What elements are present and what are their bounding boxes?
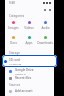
staticText: Downloads bbox=[37, 41, 53, 45]
button[interactable]: Recent files bbox=[5, 75, 54, 81]
staticText: Docs bbox=[10, 41, 17, 45]
staticText: Videos bbox=[24, 26, 34, 30]
staticText: Recent files bbox=[15, 76, 32, 80]
button[interactable]: Apps bbox=[21, 35, 37, 46]
staticText: Apps bbox=[25, 41, 33, 45]
staticText: Categories bbox=[9, 14, 25, 18]
staticText: 9:30 bbox=[9, 1, 15, 5]
staticText: Internal storage bbox=[15, 58, 38, 62]
staticText: SD card bbox=[9, 58, 20, 62]
button[interactable]: Search bbox=[42, 7, 47, 12]
staticText: Storage bbox=[9, 51, 20, 55]
staticText: Add account bbox=[15, 89, 33, 93]
button[interactable]: Add account bbox=[5, 88, 54, 94]
button[interactable]: Google Drive bbox=[5, 67, 54, 75]
button[interactable]: Audio bbox=[37, 20, 53, 31]
staticText: 12 GB free bbox=[9, 62, 22, 65]
staticText: Sources bbox=[9, 83, 21, 87]
staticText: Google Drive bbox=[15, 68, 34, 72]
button[interactable]: Account bbox=[47, 7, 52, 12]
staticText: Signed in bbox=[15, 72, 26, 75]
button[interactable]: Internal storage bbox=[5, 57, 54, 65]
staticText: Audio bbox=[41, 26, 50, 30]
button[interactable]: Docs bbox=[5, 35, 21, 46]
button[interactable]: Videos bbox=[21, 20, 37, 31]
button[interactable]: Images bbox=[5, 20, 21, 31]
button[interactable]: SD card bbox=[2, 55, 57, 67]
button[interactable]: Downloads bbox=[37, 35, 53, 46]
staticText: 32 GB free bbox=[15, 62, 28, 65]
staticText: Images bbox=[8, 26, 19, 30]
